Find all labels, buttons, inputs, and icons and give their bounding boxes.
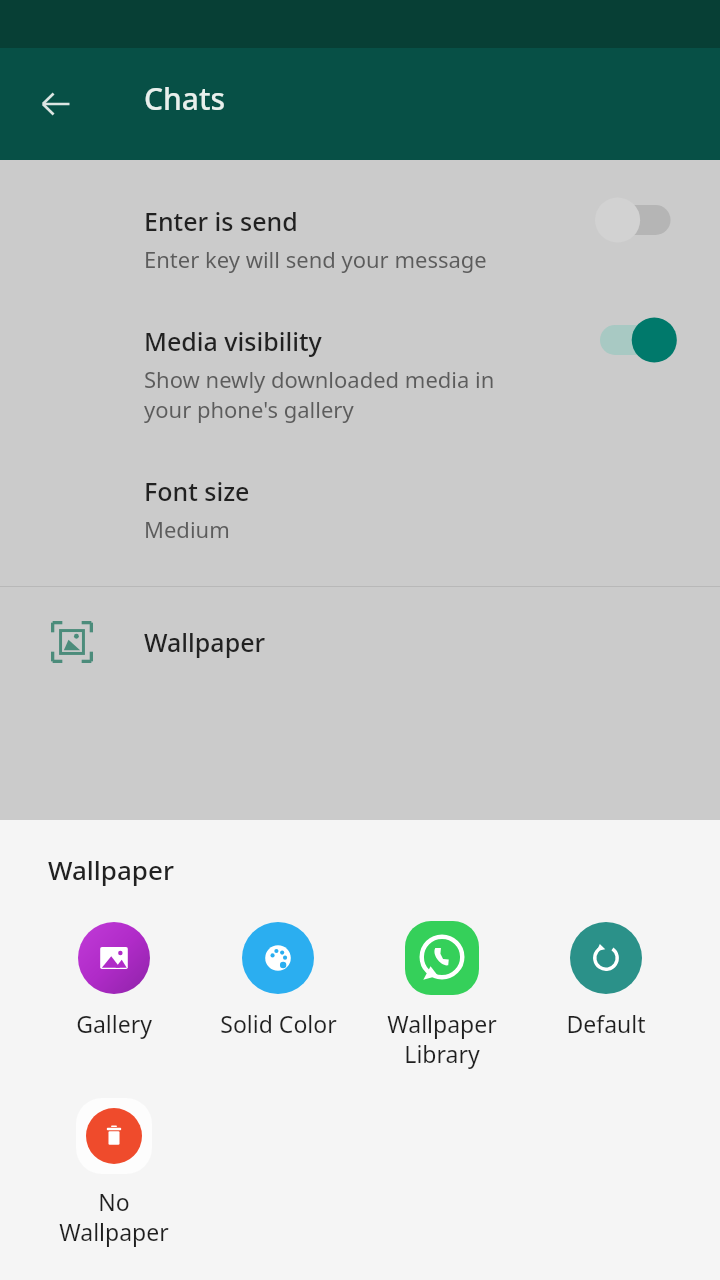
button[interactable]: Back bbox=[28, 76, 84, 132]
staticText: Medium bbox=[144, 514, 230, 544]
button[interactable]: Wallpaper bbox=[0, 587, 720, 697]
button[interactable]: Wallpaper Library bbox=[370, 920, 514, 1070]
button[interactable]: Font size bbox=[0, 424, 720, 544]
button[interactable]: Enter is send bbox=[0, 160, 720, 274]
staticText: Default bbox=[566, 1008, 646, 1039]
button[interactable]: Media visibility bbox=[0, 274, 720, 424]
staticText: Wallpaper bbox=[48, 852, 174, 887]
button[interactable]: Gallery bbox=[42, 920, 186, 1039]
staticText: Solid Color bbox=[220, 1008, 337, 1039]
staticText: Gallery bbox=[76, 1008, 152, 1039]
button[interactable]: Solid Color bbox=[206, 920, 350, 1039]
button[interactable]: No Wallpaper bbox=[42, 1098, 186, 1248]
staticText: Wallpaper bbox=[144, 625, 266, 659]
button[interactable]: Default bbox=[534, 920, 678, 1039]
staticText: Chats bbox=[144, 78, 226, 119]
staticText: Font size bbox=[144, 474, 250, 508]
staticText: Wallpaper Library bbox=[387, 1008, 497, 1070]
staticText: Enter key will send your message bbox=[144, 244, 487, 274]
staticText: No Wallpaper bbox=[59, 1186, 169, 1248]
staticText: Media visibility bbox=[144, 324, 322, 358]
staticText: Enter is send bbox=[144, 204, 298, 238]
staticText: Show newly downloaded media in your phon… bbox=[144, 364, 495, 424]
